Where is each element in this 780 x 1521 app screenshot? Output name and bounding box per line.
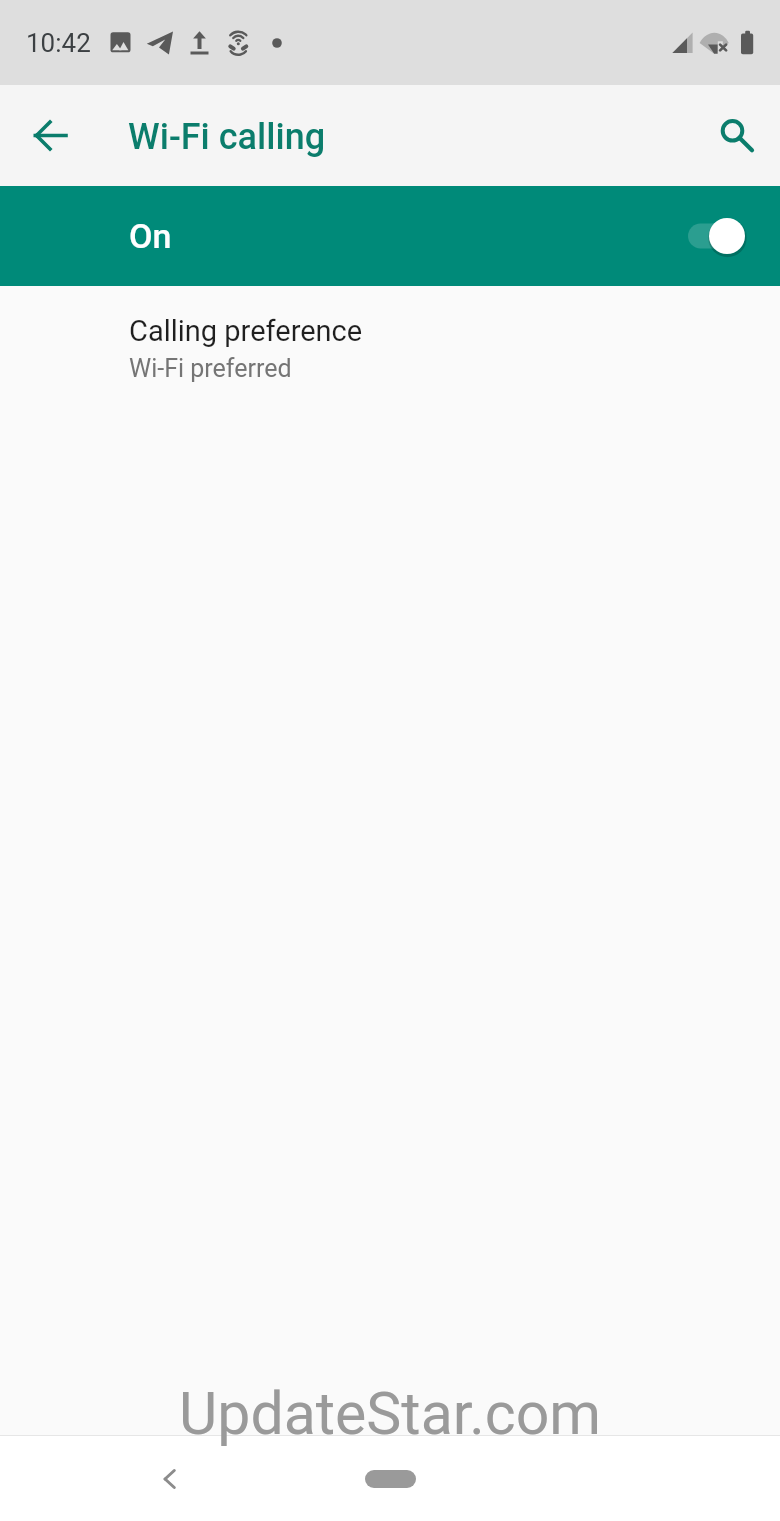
- button[interactable]: Search: [679, 85, 780, 186]
- button[interactable]: Back: [114, 1436, 224, 1521]
- staticText: 10:42: [26, 28, 91, 58]
- button[interactable]: Calling preference: [0, 286, 780, 405]
- staticText: Wi-Fi preferred: [129, 354, 292, 383]
- button[interactable]: On: [0, 186, 780, 286]
- button[interactable]: Back: [0, 85, 101, 186]
- staticText: UpdateStar.com: [179, 1379, 602, 1448]
- staticText: Calling preference: [129, 314, 363, 348]
- staticText: Wi-Fi calling: [128, 116, 326, 158]
- button[interactable]: Wi-Fi calling on: [682, 208, 750, 264]
- staticText: On: [129, 216, 172, 256]
- button[interactable]: Home: [320, 1436, 460, 1521]
